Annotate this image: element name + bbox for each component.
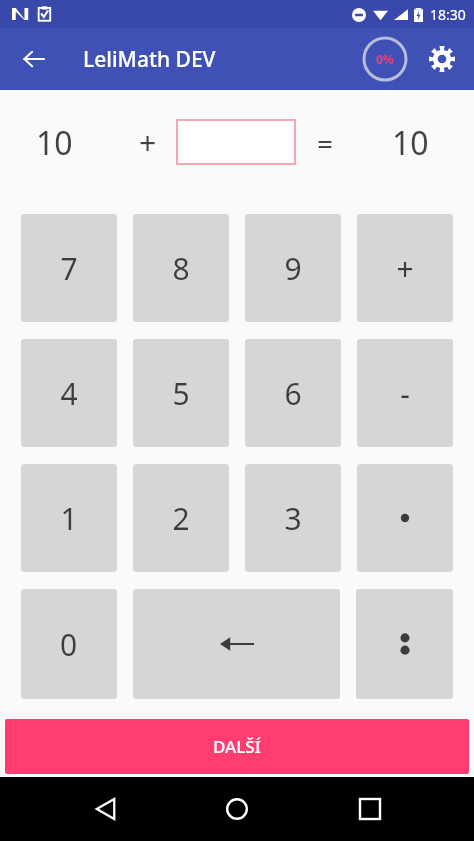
- button[interactable]: Back: [10, 35, 58, 83]
- staticText: 9: [284, 248, 302, 289]
- button[interactable]: 2: [133, 464, 229, 572]
- staticText: +: [139, 122, 157, 163]
- button[interactable]: 3: [245, 464, 341, 572]
- button[interactable]: 7: [21, 214, 117, 322]
- staticText: 4: [60, 373, 78, 414]
- staticText: 3: [284, 498, 302, 539]
- button[interactable]: 4: [21, 339, 117, 447]
- staticText: 6: [284, 373, 302, 414]
- staticText: 0: [60, 624, 78, 665]
- staticText: 10: [36, 121, 73, 165]
- button[interactable]: Recent apps: [342, 781, 398, 837]
- button[interactable]: Multiply: [357, 464, 453, 572]
- staticText: 2: [172, 498, 190, 539]
- button[interactable]: Settings: [418, 35, 466, 83]
- staticText: LeliMath DEV: [83, 45, 216, 74]
- button[interactable]: DALŠÍ: [5, 719, 469, 774]
- staticText: 1: [60, 498, 78, 539]
- staticText: DALŠÍ: [213, 735, 261, 758]
- button[interactable]: -: [357, 339, 453, 447]
- button[interactable]: 6: [245, 339, 341, 447]
- button[interactable]: Back: [77, 781, 133, 837]
- button[interactable]: 1: [21, 464, 117, 572]
- staticText: =: [317, 124, 334, 162]
- staticText: 8: [172, 248, 190, 289]
- staticText: 5: [172, 373, 190, 414]
- staticText: 7: [60, 248, 78, 289]
- button[interactable]: Answer input: [176, 119, 296, 165]
- button[interactable]: Divide: [356, 589, 453, 699]
- staticText: -: [400, 373, 410, 414]
- button[interactable]: Progress 0 percent: [362, 36, 408, 82]
- staticText: 10: [392, 121, 429, 165]
- button[interactable]: 8: [133, 214, 229, 322]
- button[interactable]: Home: [209, 781, 265, 837]
- staticText: 18:30: [430, 5, 466, 24]
- staticText: 0%: [376, 51, 394, 67]
- button[interactable]: 5: [133, 339, 229, 447]
- button[interactable]: 0: [21, 589, 117, 699]
- staticText: +: [396, 248, 414, 289]
- button[interactable]: +: [357, 214, 453, 322]
- button[interactable]: Backspace: [133, 589, 340, 699]
- button[interactable]: 9: [245, 214, 341, 322]
